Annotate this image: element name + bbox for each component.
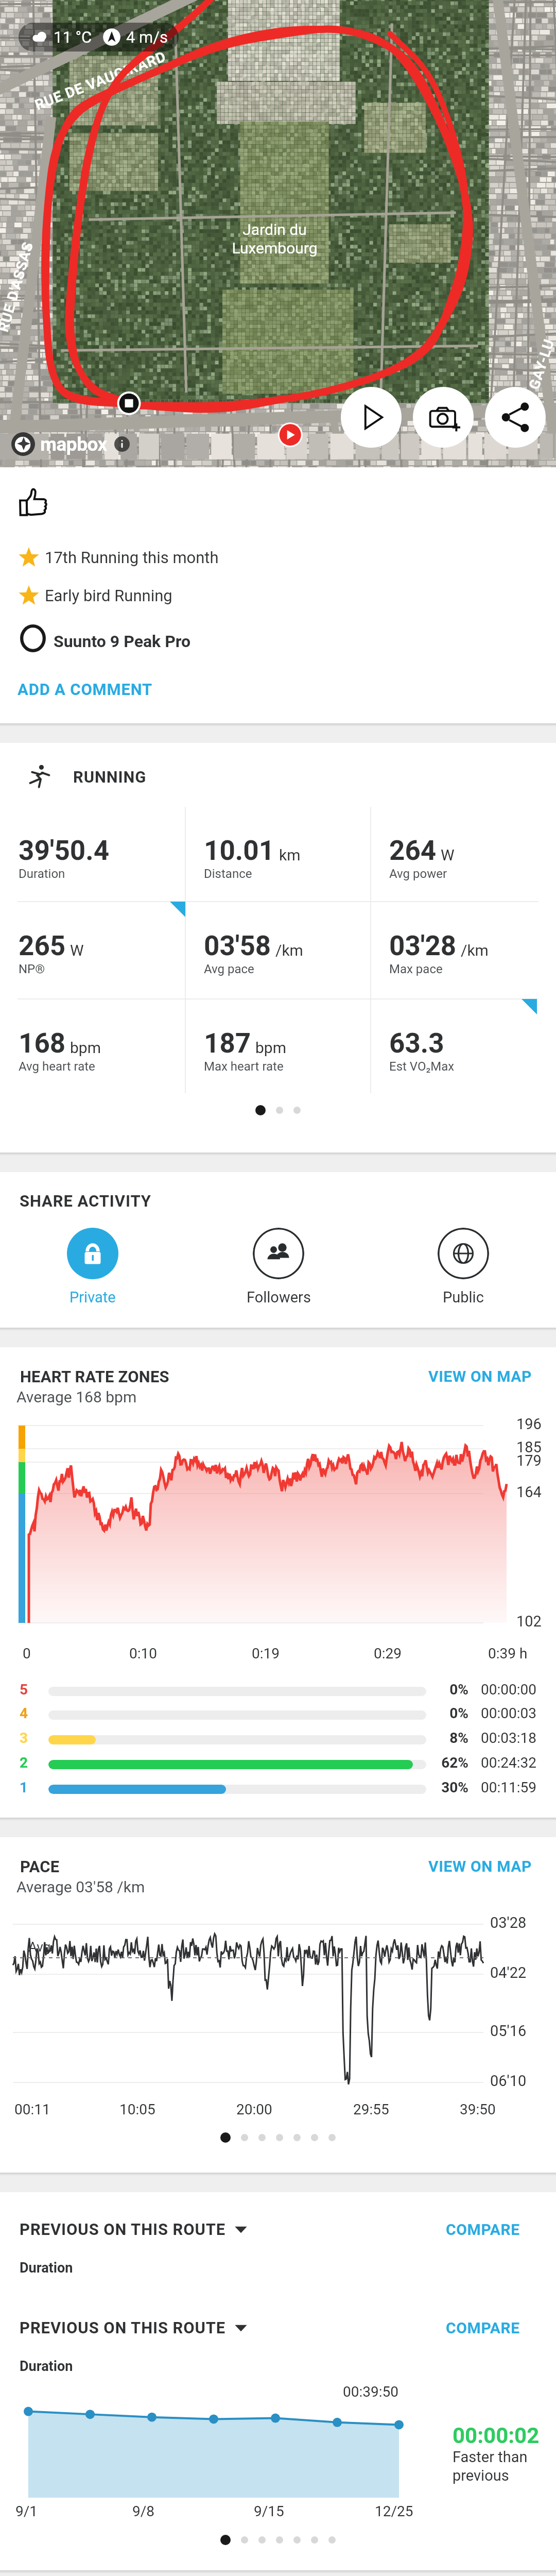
staticText: 05'16 [490, 2022, 527, 2040]
staticText: NP® [19, 962, 45, 976]
staticText: 102 [516, 1613, 542, 1630]
staticText: Duration [19, 867, 65, 881]
staticText: 06'10 [490, 2072, 527, 2090]
staticText: 29:55 [353, 2101, 389, 2118]
staticText: bpm [255, 1039, 286, 1057]
staticText: 00:03:18 [481, 1730, 536, 1747]
staticText: Average 03'58 /km [16, 1878, 145, 1896]
staticText: Avg power [389, 867, 447, 881]
staticText: W [70, 941, 84, 959]
staticText: 00:39:50 [343, 2383, 398, 2400]
staticText: 30% [431, 1779, 468, 1796]
staticText: W [441, 846, 455, 864]
staticText: 164 [516, 1483, 542, 1501]
staticText: 4 [20, 1705, 28, 1722]
staticText: 10.01 [204, 835, 275, 867]
staticText: 0:10 [129, 1645, 157, 1662]
staticText: Early bird Running [45, 586, 172, 605]
staticText: Max heart rate [204, 1059, 284, 1074]
staticText: 39'50.4 [19, 835, 110, 867]
staticText: Suunto 9 Peak Pro [54, 632, 191, 651]
button[interactable]: COMPARE [446, 2221, 520, 2239]
staticText: RUE GAY-LU [515, 336, 556, 422]
staticText: 20:00 [236, 2101, 272, 2118]
staticText: Private [69, 1289, 116, 1306]
staticText: 264 [389, 835, 437, 867]
staticText: ADD A COMMENT [18, 680, 153, 699]
staticText: Public [443, 1289, 484, 1306]
button[interactable]: PREVIOUS ON THIS ROUTE [20, 2220, 248, 2239]
staticText: 8% [431, 1730, 468, 1747]
staticText: 03'28 [389, 930, 457, 962]
staticText: 265 [19, 930, 66, 962]
staticText: SHARE ACTIVITY [20, 1192, 151, 1210]
staticText: /km [275, 941, 303, 959]
staticText: 04'22 [490, 1964, 527, 1981]
staticText: Jardin du Luxembourg [232, 221, 318, 257]
staticText: Average 168 bpm [16, 1388, 137, 1406]
staticText: 12/25 [375, 2503, 413, 2520]
staticText: 0:19 [252, 1645, 280, 1662]
staticText: 39:50 [460, 2101, 496, 2118]
button[interactable]: ADD A COMMENT [18, 680, 153, 699]
staticText: PREVIOUS ON THIS ROUTE [20, 2318, 226, 2337]
staticText: 168 [19, 1027, 66, 1059]
button[interactable]: Public [407, 1228, 520, 1306]
staticText: 3 [20, 1730, 28, 1747]
staticText: VIEW ON MAP [428, 1857, 532, 1875]
staticText: Max pace [389, 962, 443, 976]
staticText: 63.3 [389, 1027, 444, 1059]
button[interactable]: PREVIOUS ON THIS ROUTE [20, 2318, 248, 2337]
button[interactable]: Share [485, 387, 546, 448]
staticText: 0 [23, 1645, 31, 1662]
staticText: 179 [516, 1452, 542, 1469]
staticText: mapbox [40, 433, 107, 455]
staticText: 9/15 [254, 2503, 284, 2520]
staticText: Avg heart rate [19, 1059, 95, 1074]
staticText: Avg pace [204, 962, 254, 976]
staticText: PACE [20, 1857, 60, 1876]
staticText: Est VO₂Max [389, 1059, 455, 1074]
button[interactable]: Add photo [413, 387, 474, 448]
staticText: 1 [20, 1779, 28, 1796]
staticText: Duration [20, 2358, 73, 2375]
staticText: RUE D'ASSAS [0, 240, 37, 334]
staticText: 11 °C [54, 28, 92, 46]
staticText: /km [461, 941, 489, 959]
staticText: 00:00:00 [481, 1681, 536, 1698]
staticText: 0:39 h [488, 1645, 528, 1662]
staticText: COMPARE [446, 2319, 520, 2337]
button[interactable]: VIEW ON MAP [428, 1367, 532, 1385]
staticText: bpm [70, 1039, 101, 1057]
button[interactable]: Play [341, 387, 402, 448]
staticText: 9/1 [15, 2503, 38, 2520]
staticText: VIEW ON MAP [428, 1367, 532, 1385]
button[interactable]: Followers [222, 1228, 335, 1306]
staticText: 0% [431, 1705, 468, 1722]
staticText: COMPARE [446, 2221, 520, 2239]
staticText: HEART RATE ZONES [20, 1367, 169, 1386]
staticText: 187 [204, 1027, 251, 1059]
staticText: RUNNING [73, 768, 147, 786]
button[interactable]: Private [36, 1228, 149, 1306]
staticText: 00:00:02 [453, 2423, 540, 2448]
staticText: 185 [516, 1438, 542, 1456]
staticText: PREVIOUS ON THIS ROUTE [20, 2220, 226, 2239]
staticText: 17th Running this month [45, 548, 219, 567]
staticText: 0:29 [374, 1645, 402, 1662]
staticText: 62% [431, 1754, 468, 1771]
staticText: 03'58 [204, 930, 271, 962]
button[interactable]: VIEW ON MAP [428, 1857, 532, 1875]
staticText: 196 [516, 1415, 542, 1433]
staticText: Duration [20, 2260, 73, 2276]
staticText: 4 m/s [126, 28, 168, 46]
staticText: 03'28 [490, 1914, 527, 1931]
staticText: 0% [431, 1681, 468, 1698]
staticText: km [279, 846, 301, 864]
staticText: 5 [20, 1681, 28, 1698]
button[interactable]: COMPARE [446, 2319, 520, 2337]
staticText: Distance [204, 867, 252, 881]
staticText: 00:11:59 [481, 1779, 536, 1796]
staticText: RUE DE VAUGIRARD [32, 48, 169, 114]
staticText: Followers [247, 1289, 311, 1306]
